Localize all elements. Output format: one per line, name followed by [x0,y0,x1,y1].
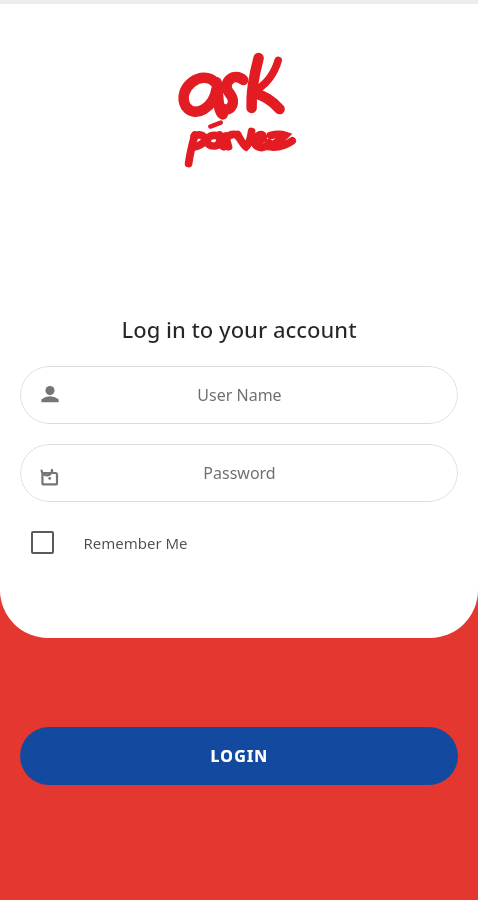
staticText: Remember Me [83,533,188,553]
button[interactable]: Remember Me [20,525,200,560]
staticText: Log in to your account [121,314,357,344]
staticText: Password [203,462,276,484]
staticText: LOGIN [210,745,269,767]
button[interactable]: LOGIN [20,727,458,785]
button[interactable]: Password [20,444,458,502]
staticText: User Name [197,384,282,406]
button[interactable]: User Name [20,366,458,424]
